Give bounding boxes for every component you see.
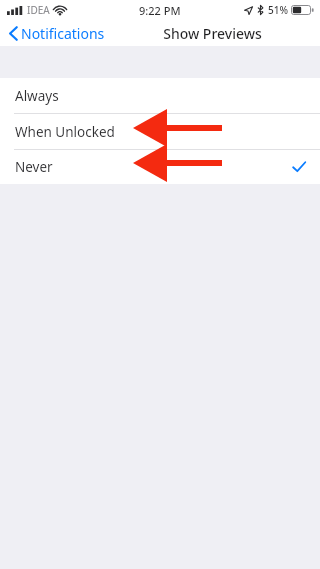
- staticText: 9:22 PM: [139, 3, 181, 18]
- staticText: Never: [15, 158, 53, 176]
- staticText: Show Previews: [163, 24, 262, 43]
- button[interactable]: Always: [0, 78, 320, 113]
- button[interactable]: When Unlocked: [0, 114, 320, 149]
- staticText: Always: [15, 87, 59, 105]
- button[interactable]: Notifications: [0, 22, 111, 45]
- staticText: When Unlocked: [15, 123, 115, 141]
- button[interactable]: Never: [0, 150, 320, 184]
- staticText: IDEA: [27, 3, 50, 17]
- staticText: 51%: [268, 3, 288, 17]
- staticText: Notifications: [21, 24, 105, 43]
